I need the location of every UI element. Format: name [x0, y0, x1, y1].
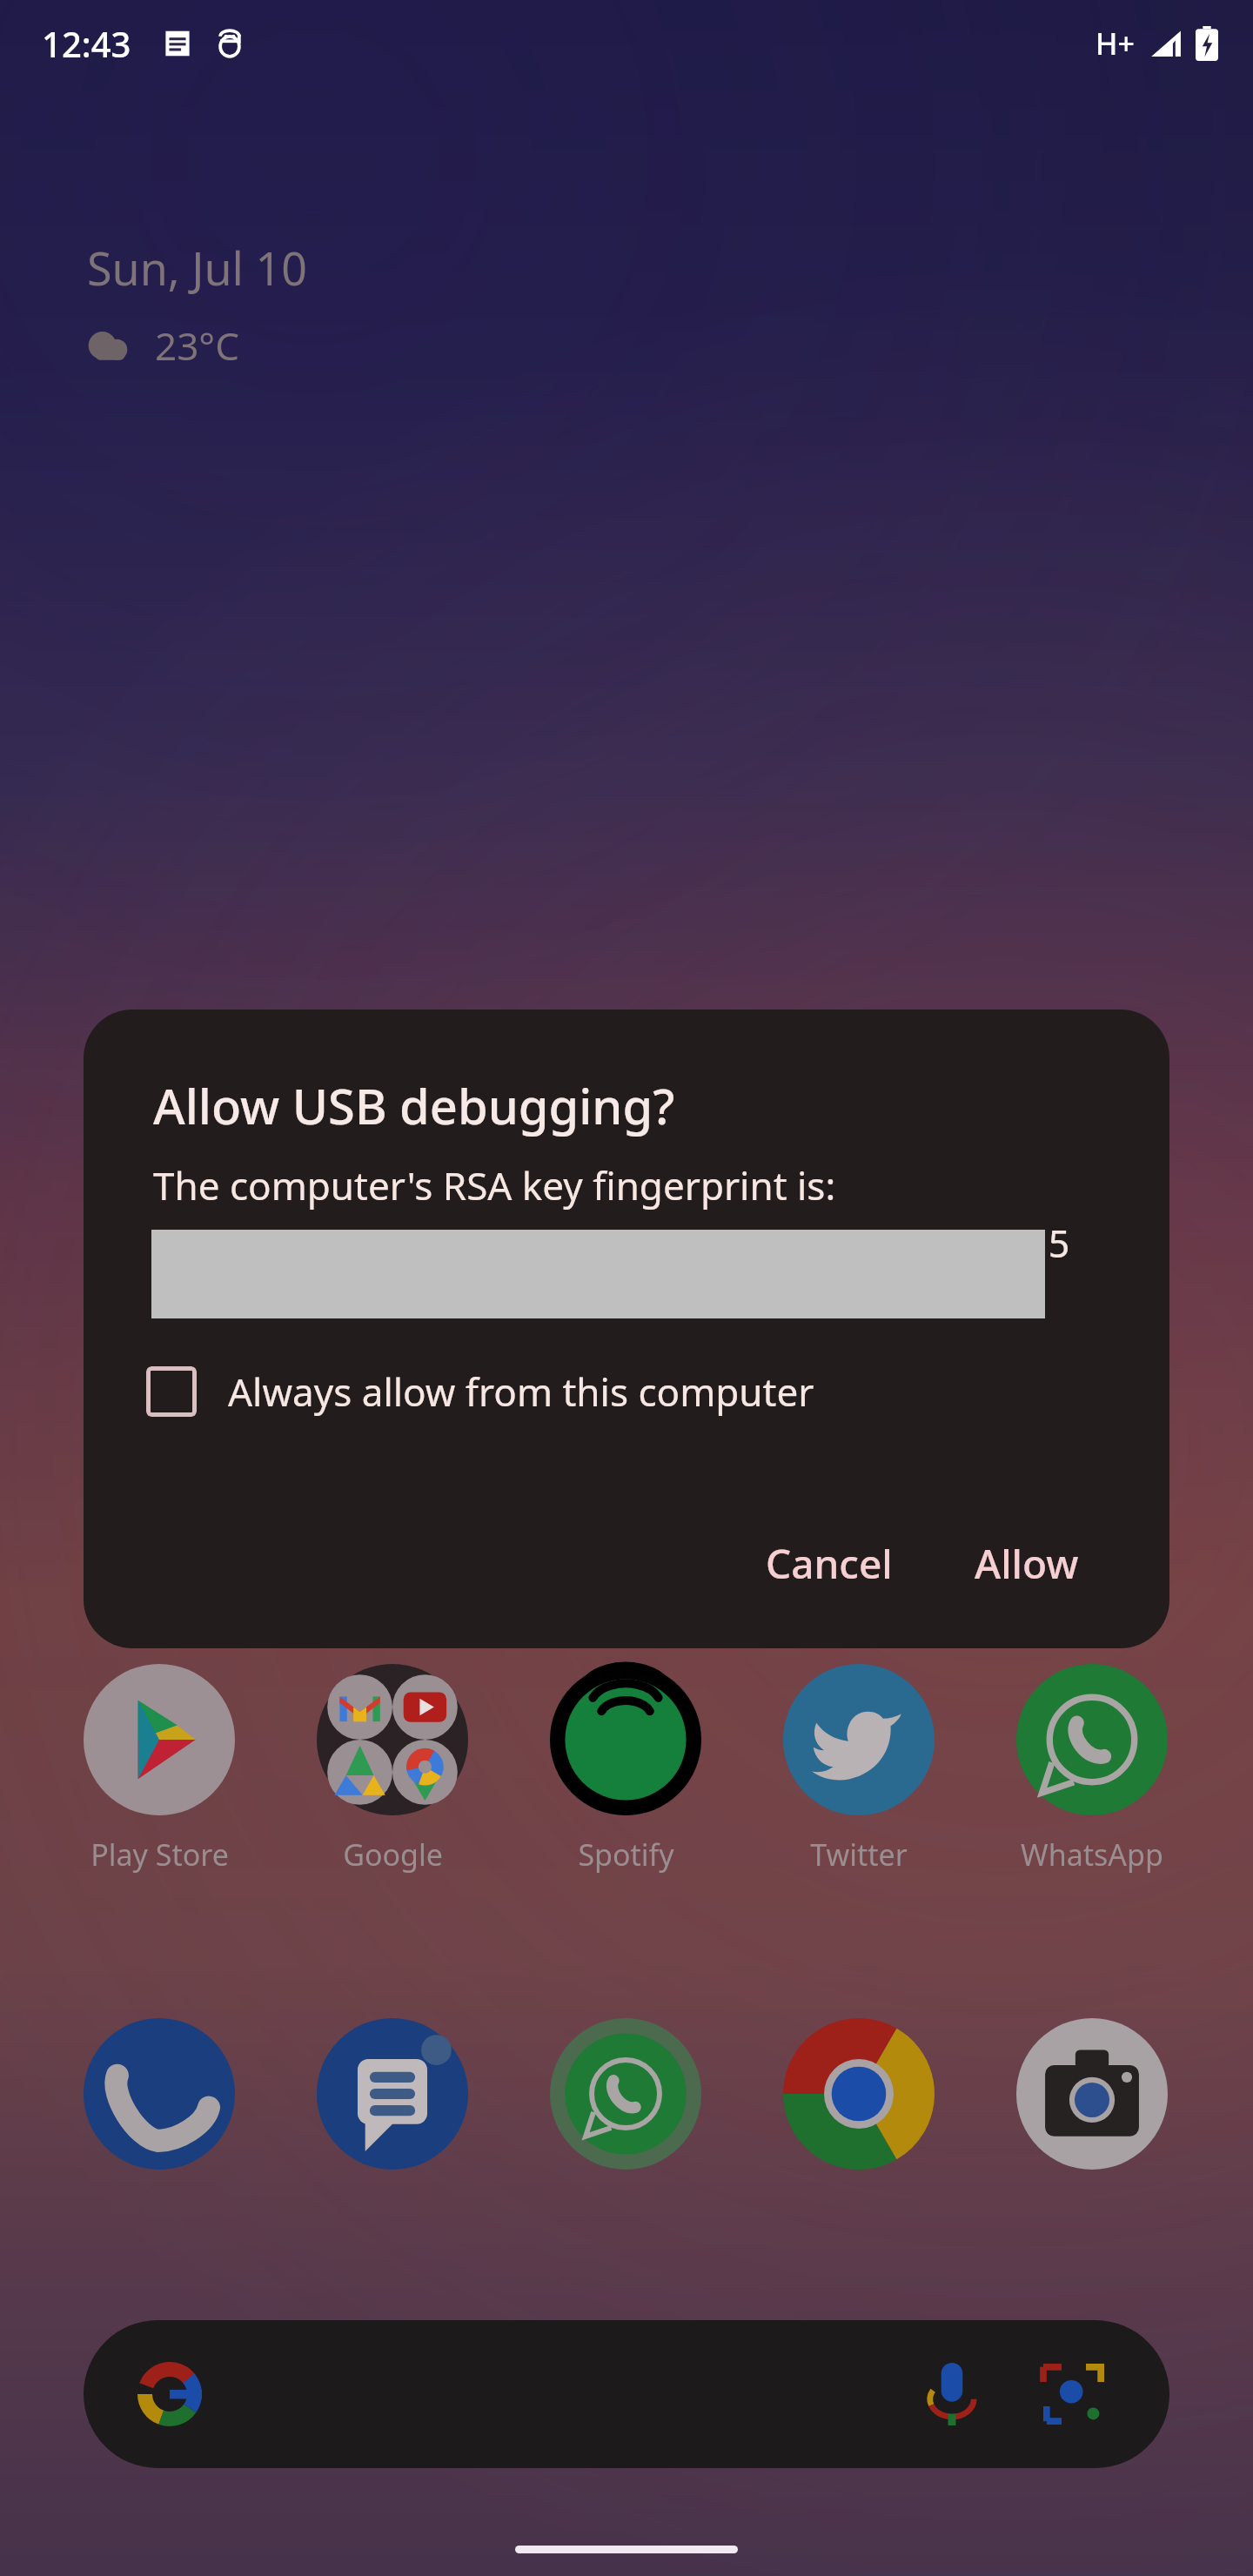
button[interactable]: Always allow from this computer — [146, 1354, 814, 1429]
button[interactable]: Google — [288, 1664, 497, 1875]
button[interactable]: Phone — [55, 2018, 264, 2170]
button[interactable]: WhatsApp — [521, 2018, 730, 2170]
staticText: 5 — [1048, 1217, 1071, 1269]
staticText: The computer's RSA key fingerprint is: — [153, 1159, 836, 1211]
staticText: Spotify — [578, 1835, 674, 1875]
button[interactable]: Chrome — [754, 2018, 963, 2170]
button[interactable]: Messages — [288, 2018, 497, 2170]
button[interactable]: Cancel — [736, 1517, 922, 1610]
staticText: WhatsApp — [1021, 1835, 1163, 1875]
staticText: 12:43 — [42, 20, 131, 67]
staticText: 23°C — [155, 319, 239, 372]
button[interactable]: Camera — [988, 2018, 1196, 2170]
staticText: Allow — [975, 1536, 1079, 1591]
staticText: Always allow from this computer — [228, 1365, 814, 1418]
other: Google Search — [137, 2362, 202, 2426]
button[interactable]: Voice search — [914, 2356, 990, 2432]
staticText: Sun, Jul 10 — [87, 237, 308, 299]
button[interactable]: Twitter — [754, 1664, 963, 1875]
staticText: H+ — [1096, 23, 1135, 64]
button[interactable]: Spotify — [521, 1664, 730, 1875]
button[interactable]: Allow — [945, 1517, 1109, 1610]
button[interactable]: Google Lens — [1035, 2356, 1112, 2432]
button[interactable]: Play Store — [55, 1664, 264, 1875]
staticText: Cancel — [766, 1536, 893, 1591]
button[interactable]: WhatsApp — [988, 1664, 1196, 1875]
staticText: Allow USB debugging? — [153, 1072, 675, 1138]
staticText: Twitter — [810, 1835, 908, 1875]
button[interactable]: Google Search — [84, 2320, 1169, 2468]
staticText: Play Store — [90, 1835, 229, 1875]
staticText: Google — [343, 1835, 443, 1875]
button[interactable]: Sun, Jul 10 — [87, 237, 308, 372]
